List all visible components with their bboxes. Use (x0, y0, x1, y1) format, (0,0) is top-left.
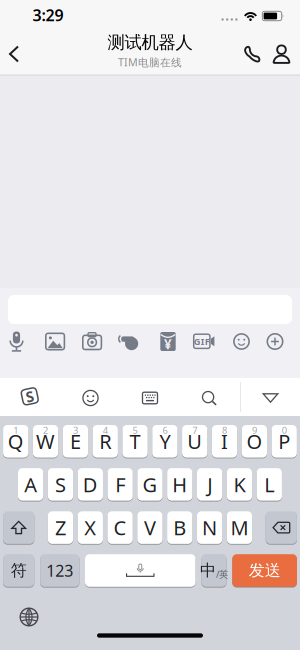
staticText: 8 (222, 424, 227, 436)
staticText: 测试机器人 (107, 32, 192, 53)
staticText: L (264, 471, 274, 498)
staticText: /英 (216, 568, 228, 580)
staticText: 发送 (249, 561, 281, 580)
button[interactable]: Chinese/English (201, 554, 226, 587)
button[interactable]: E (63, 424, 88, 458)
staticText: 6 (162, 424, 167, 436)
button[interactable]: R (93, 424, 118, 458)
button[interactable]: H (167, 468, 192, 501)
button[interactable]: Emoji keyboard (76, 384, 104, 412)
button[interactable]: Y (152, 424, 177, 458)
button[interactable]: Profile (268, 40, 294, 68)
button[interactable]: Back (1, 39, 27, 69)
staticText: 3 (73, 424, 78, 436)
button[interactable]: T (122, 424, 148, 458)
button[interactable]: Emoji (226, 328, 256, 354)
button[interactable]: Shift (3, 511, 34, 544)
staticText: GIF (194, 335, 210, 347)
button[interactable]: Switch keyboard (14, 602, 44, 632)
button[interactable]: Keyboard layout (136, 384, 164, 412)
button[interactable]: Space (85, 554, 195, 587)
staticText: P (278, 428, 290, 455)
staticText: 7 (192, 424, 197, 436)
staticText: R (99, 428, 111, 455)
button[interactable]: K (227, 468, 252, 501)
button[interactable]: Symbols (3, 554, 34, 587)
staticText: O (246, 428, 262, 455)
staticText: 4 (103, 424, 108, 436)
staticText: N (202, 514, 217, 541)
staticText: 1 (13, 424, 18, 436)
staticText: F (115, 471, 125, 498)
staticText: U (187, 428, 202, 455)
button[interactable]: Red packet (153, 328, 183, 354)
staticText: S (26, 387, 34, 406)
staticText: TIM电脑在线 (118, 55, 182, 69)
staticText: V (144, 514, 156, 541)
button[interactable]: More (260, 328, 290, 354)
button[interactable]: U (182, 424, 207, 458)
button[interactable]: Z (48, 511, 73, 544)
staticText: Y (159, 428, 170, 455)
button[interactable]: L (257, 468, 282, 501)
button[interactable]: Numbers (40, 554, 79, 587)
button[interactable]: P (272, 424, 297, 458)
staticText: A (24, 471, 37, 498)
staticText: G (142, 471, 157, 498)
button[interactable]: A (18, 468, 43, 501)
staticText: E (70, 428, 81, 455)
button[interactable]: D (78, 468, 103, 501)
staticText: Q (8, 428, 24, 455)
button[interactable]: Camera (77, 328, 107, 354)
button[interactable]: Voice message (1, 328, 31, 354)
button[interactable]: F (107, 468, 133, 501)
staticText: 0 (282, 424, 287, 436)
button[interactable]: C (107, 511, 133, 544)
button[interactable]: Delete (266, 511, 297, 544)
button[interactable]: Voice call (239, 40, 265, 68)
staticText: 9 (252, 424, 257, 436)
button[interactable]: M (227, 511, 252, 544)
button[interactable]: W (33, 424, 58, 458)
staticText: ¥ (164, 335, 172, 353)
staticText: W (36, 428, 55, 455)
staticText: K (233, 471, 245, 498)
button[interactable]: O (242, 424, 267, 458)
button[interactable]: Sogou (15, 381, 45, 411)
button[interactable]: Search (195, 384, 223, 412)
staticText: 123 (46, 560, 73, 581)
button[interactable]: N (197, 511, 222, 544)
staticText: 3:29 (32, 4, 63, 26)
staticText: M (230, 514, 248, 541)
button[interactable]: S (48, 468, 73, 501)
staticText: 符 (11, 561, 27, 580)
button[interactable]: Hide keyboard (256, 384, 284, 412)
button[interactable]: I (212, 424, 237, 458)
button[interactable]: GIF (189, 328, 219, 354)
staticText: I (221, 428, 228, 455)
button[interactable]: B (167, 511, 192, 544)
staticText: X (84, 514, 96, 541)
staticText: B (173, 514, 186, 541)
staticText: J (207, 471, 212, 498)
button[interactable]: G (137, 468, 163, 501)
staticText: 5 (133, 424, 138, 436)
button[interactable]: X (78, 511, 103, 544)
button[interactable]: J (197, 468, 222, 501)
staticText: 2 (43, 424, 48, 436)
staticText: D (83, 471, 98, 498)
staticText: Z (55, 514, 66, 541)
staticText: C (114, 514, 127, 541)
staticText: S (55, 471, 66, 498)
button[interactable]: Shake (113, 328, 143, 354)
button[interactable]: V (137, 511, 163, 544)
button[interactable]: Photos (40, 328, 70, 354)
staticText: 中 (200, 561, 216, 580)
button[interactable]: Q (3, 424, 28, 458)
staticText: T (130, 428, 141, 455)
button[interactable]: Send (232, 554, 297, 587)
staticText: H (172, 471, 187, 498)
